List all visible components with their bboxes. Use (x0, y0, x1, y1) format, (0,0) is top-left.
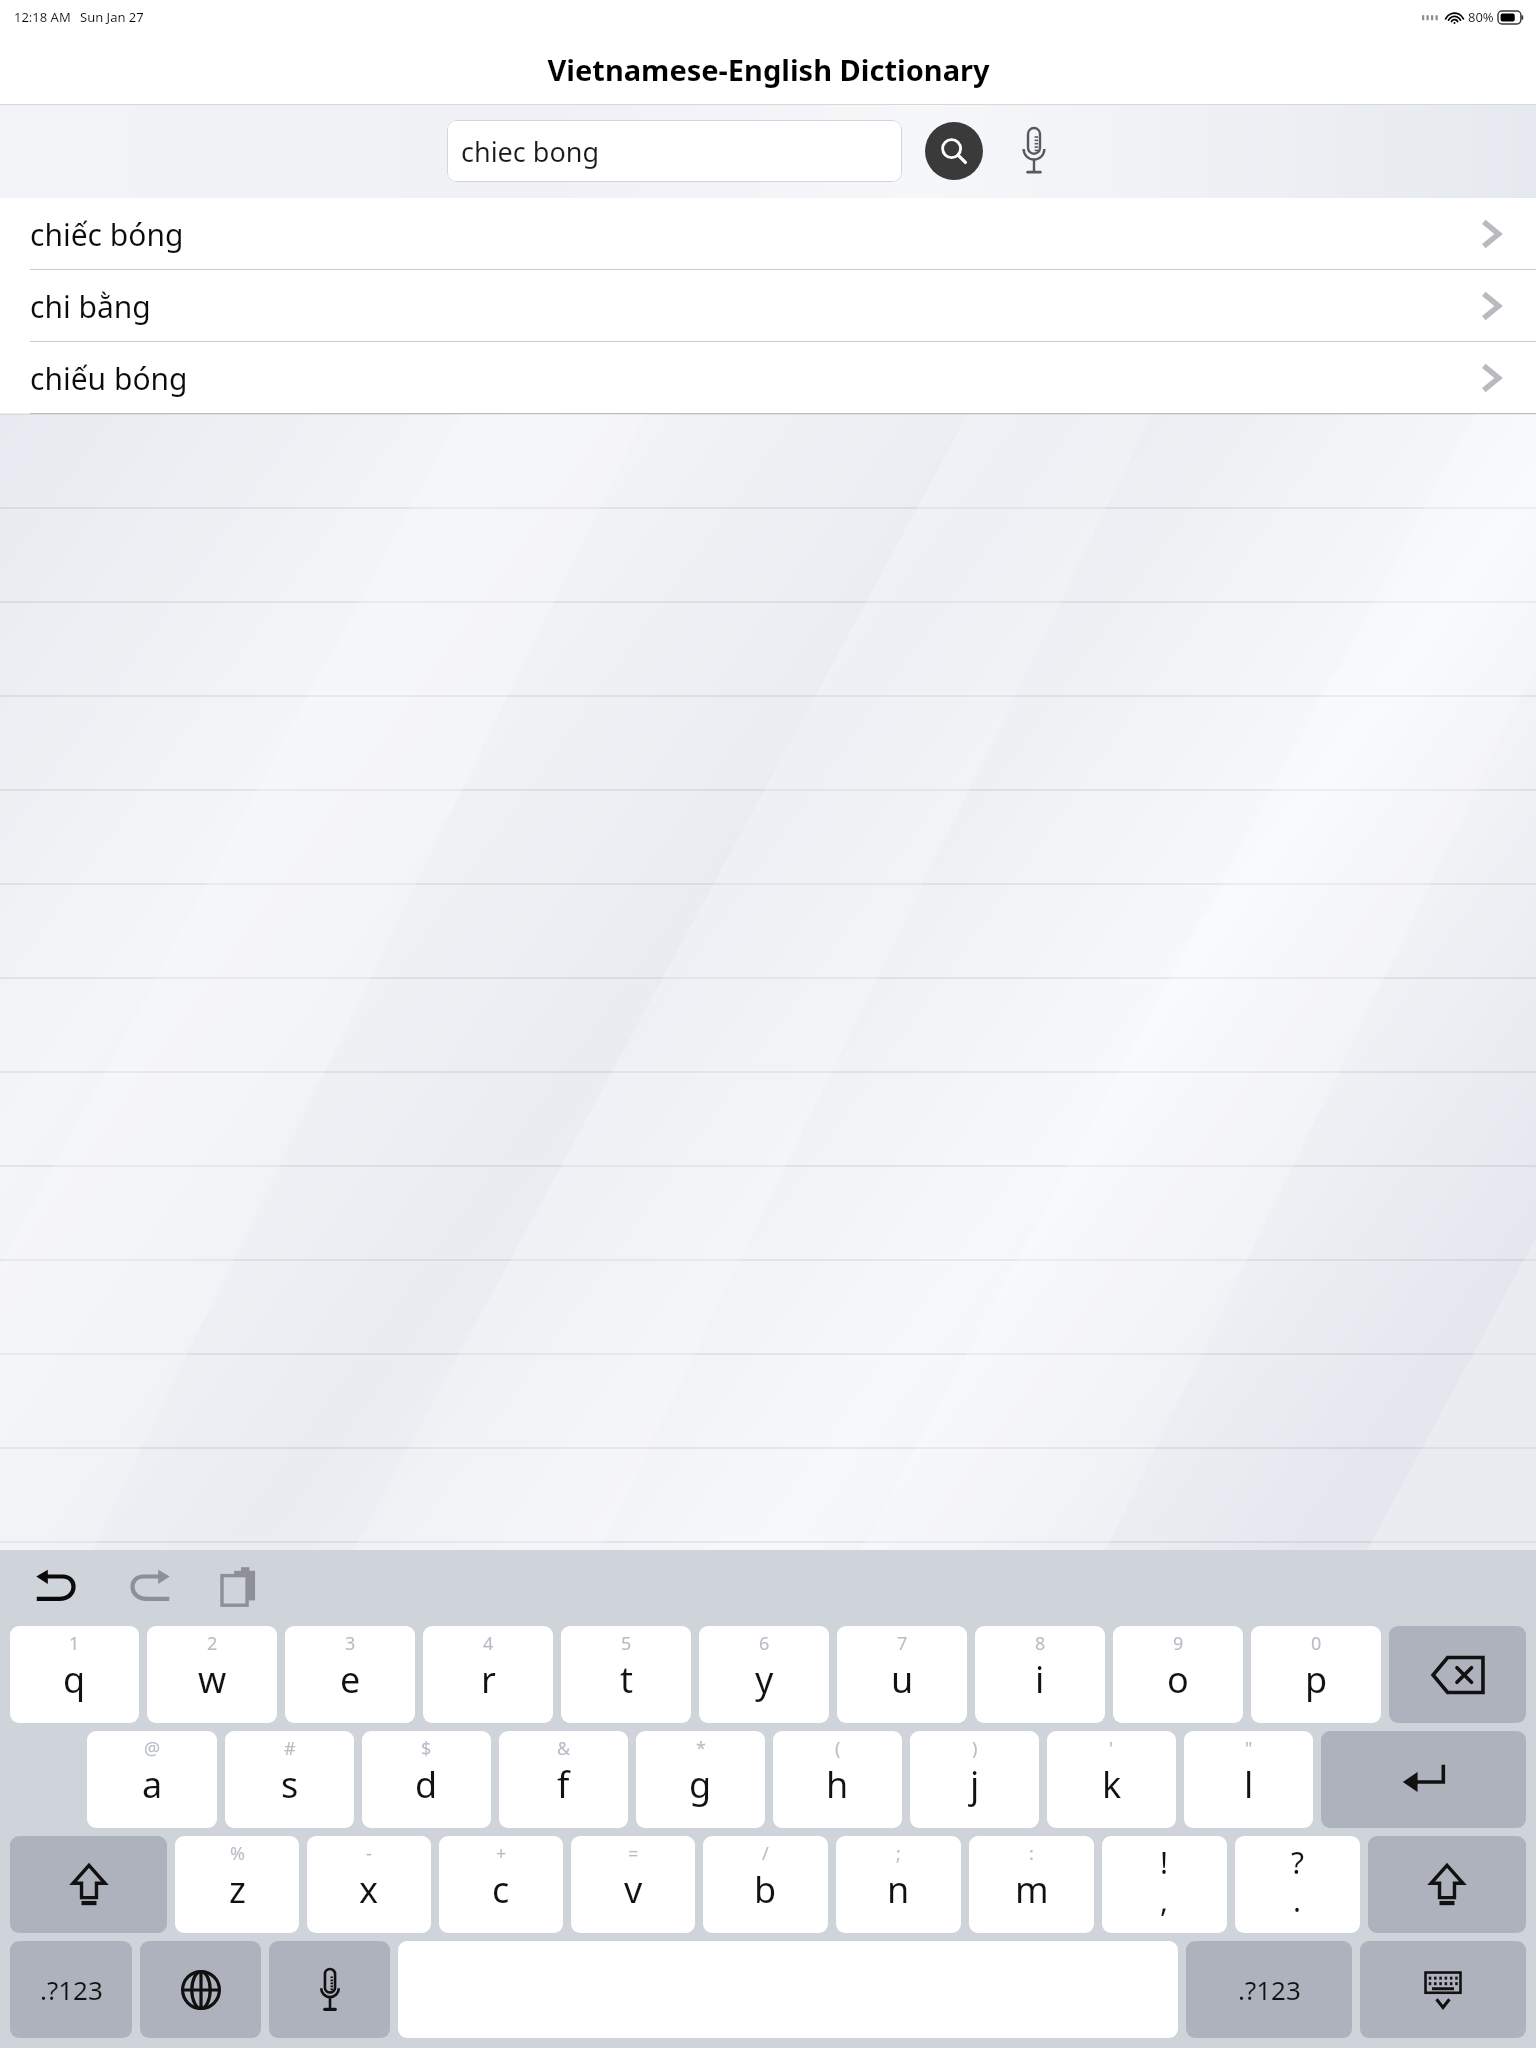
button[interactable]: ; (836, 1836, 961, 1933)
staticText: & (557, 1736, 571, 1761)
staticText: l (1244, 1760, 1254, 1809)
staticText: r (481, 1655, 496, 1704)
staticText: Vietnamese-English Dictionary (547, 50, 990, 89)
staticText: ) (972, 1736, 978, 1761)
staticText: + (496, 1841, 507, 1866)
staticText: 80% (1468, 8, 1494, 26)
button[interactable]: 7 (837, 1626, 967, 1723)
button[interactable]: 0 (1251, 1626, 1381, 1723)
button[interactable]: 3 (285, 1626, 415, 1723)
button[interactable]: Backspace (1389, 1626, 1526, 1723)
button[interactable]: 6 (699, 1626, 829, 1723)
staticText: % (230, 1841, 245, 1866)
staticText: n (887, 1865, 910, 1914)
staticText: ( (835, 1736, 841, 1761)
button[interactable]: Hide keyboard (1360, 1941, 1526, 2038)
button[interactable]: : (969, 1836, 1094, 1933)
button[interactable]: 1 (10, 1626, 139, 1723)
button[interactable]: Redo (118, 1555, 180, 1617)
button[interactable]: ) (910, 1731, 1039, 1828)
button[interactable]: chiếc bóng (0, 198, 1536, 270)
button[interactable]: chiếu bóng (0, 342, 1536, 414)
button[interactable]: * (636, 1731, 765, 1828)
button[interactable]: Voice search (1005, 122, 1063, 180)
staticText: t (620, 1655, 633, 1704)
staticText: chi bằng (30, 286, 151, 327)
staticText: ? (1291, 1842, 1305, 1883)
button[interactable]: ? (1235, 1836, 1360, 1933)
button[interactable]: Paste (210, 1555, 272, 1617)
button[interactable]: $ (362, 1731, 491, 1828)
button[interactable]: Search (925, 122, 983, 180)
staticText: @ (144, 1736, 161, 1761)
button[interactable]: Return (1321, 1731, 1526, 1828)
staticText: y (755, 1655, 774, 1704)
button[interactable]: 2 (147, 1626, 277, 1723)
button[interactable]: Shift (10, 1836, 167, 1933)
button[interactable]: Undo (26, 1555, 88, 1617)
button[interactable]: @ (87, 1731, 217, 1828)
staticText: chiếu bóng (30, 358, 188, 399)
staticText: w (198, 1655, 227, 1704)
button[interactable]: & (499, 1731, 628, 1828)
button[interactable]: 4 (423, 1626, 553, 1723)
button[interactable]: " (1184, 1731, 1313, 1828)
staticText: ' (1109, 1736, 1114, 1761)
staticText: 9 (1173, 1631, 1184, 1656)
button[interactable]: chi bằng (0, 270, 1536, 342)
staticText: chiec bong (461, 133, 600, 170)
button[interactable]: = (571, 1836, 695, 1933)
button[interactable]: Shift (1368, 1836, 1526, 1933)
staticText: " (1245, 1736, 1253, 1761)
staticText: - (366, 1841, 372, 1866)
staticText: , (1160, 1880, 1169, 1921)
button[interactable]: % (175, 1836, 299, 1933)
staticText: s (281, 1760, 299, 1809)
staticText: 5 (621, 1631, 632, 1656)
staticText: a (142, 1760, 163, 1809)
staticText: 0 (1311, 1631, 1322, 1656)
button[interactable]: Change keyboard (140, 1941, 261, 2038)
staticText: h (826, 1760, 849, 1809)
staticText: .?123 (40, 1972, 103, 2007)
button[interactable]: 9 (1113, 1626, 1243, 1723)
staticText: d (415, 1760, 438, 1809)
staticText: v (624, 1865, 643, 1914)
staticText: e (340, 1655, 361, 1704)
staticText: # (284, 1736, 296, 1761)
staticText: x (359, 1865, 379, 1914)
button[interactable]: .?123 (1186, 1941, 1352, 2038)
staticText: 8 (1035, 1631, 1046, 1656)
staticText: 2 (207, 1631, 218, 1656)
staticText: $ (421, 1736, 432, 1761)
staticText: 7 (897, 1631, 908, 1656)
staticText: b (754, 1865, 777, 1914)
staticText: / (762, 1841, 769, 1866)
button[interactable]: 8 (975, 1626, 1105, 1723)
button[interactable]: Dictation (269, 1941, 390, 2038)
button[interactable]: / (703, 1836, 828, 1933)
button[interactable]: ( (773, 1731, 902, 1828)
staticText: k (1102, 1760, 1122, 1809)
staticText: ; (896, 1841, 901, 1866)
button[interactable]: chiec bong (447, 120, 902, 182)
button[interactable]: .?123 (10, 1941, 132, 2038)
staticText: q (63, 1655, 86, 1704)
staticText: g (689, 1760, 712, 1809)
staticText: 6 (759, 1631, 770, 1656)
staticText: Sun Jan 27 (80, 8, 144, 26)
staticText: : (1029, 1841, 1034, 1866)
button[interactable]: ! (1102, 1836, 1227, 1933)
button[interactable]: ' (1047, 1731, 1176, 1828)
staticText: .?123 (1238, 1972, 1301, 2007)
staticText: ! (1160, 1842, 1169, 1883)
button[interactable]: - (307, 1836, 431, 1933)
button[interactable]: # (225, 1731, 354, 1828)
staticText: j (970, 1760, 980, 1809)
button[interactable]: + (439, 1836, 563, 1933)
staticText: m (1015, 1865, 1049, 1914)
staticText: 4 (483, 1631, 494, 1656)
staticText: f (557, 1760, 570, 1809)
button[interactable]: 5 (561, 1626, 691, 1723)
